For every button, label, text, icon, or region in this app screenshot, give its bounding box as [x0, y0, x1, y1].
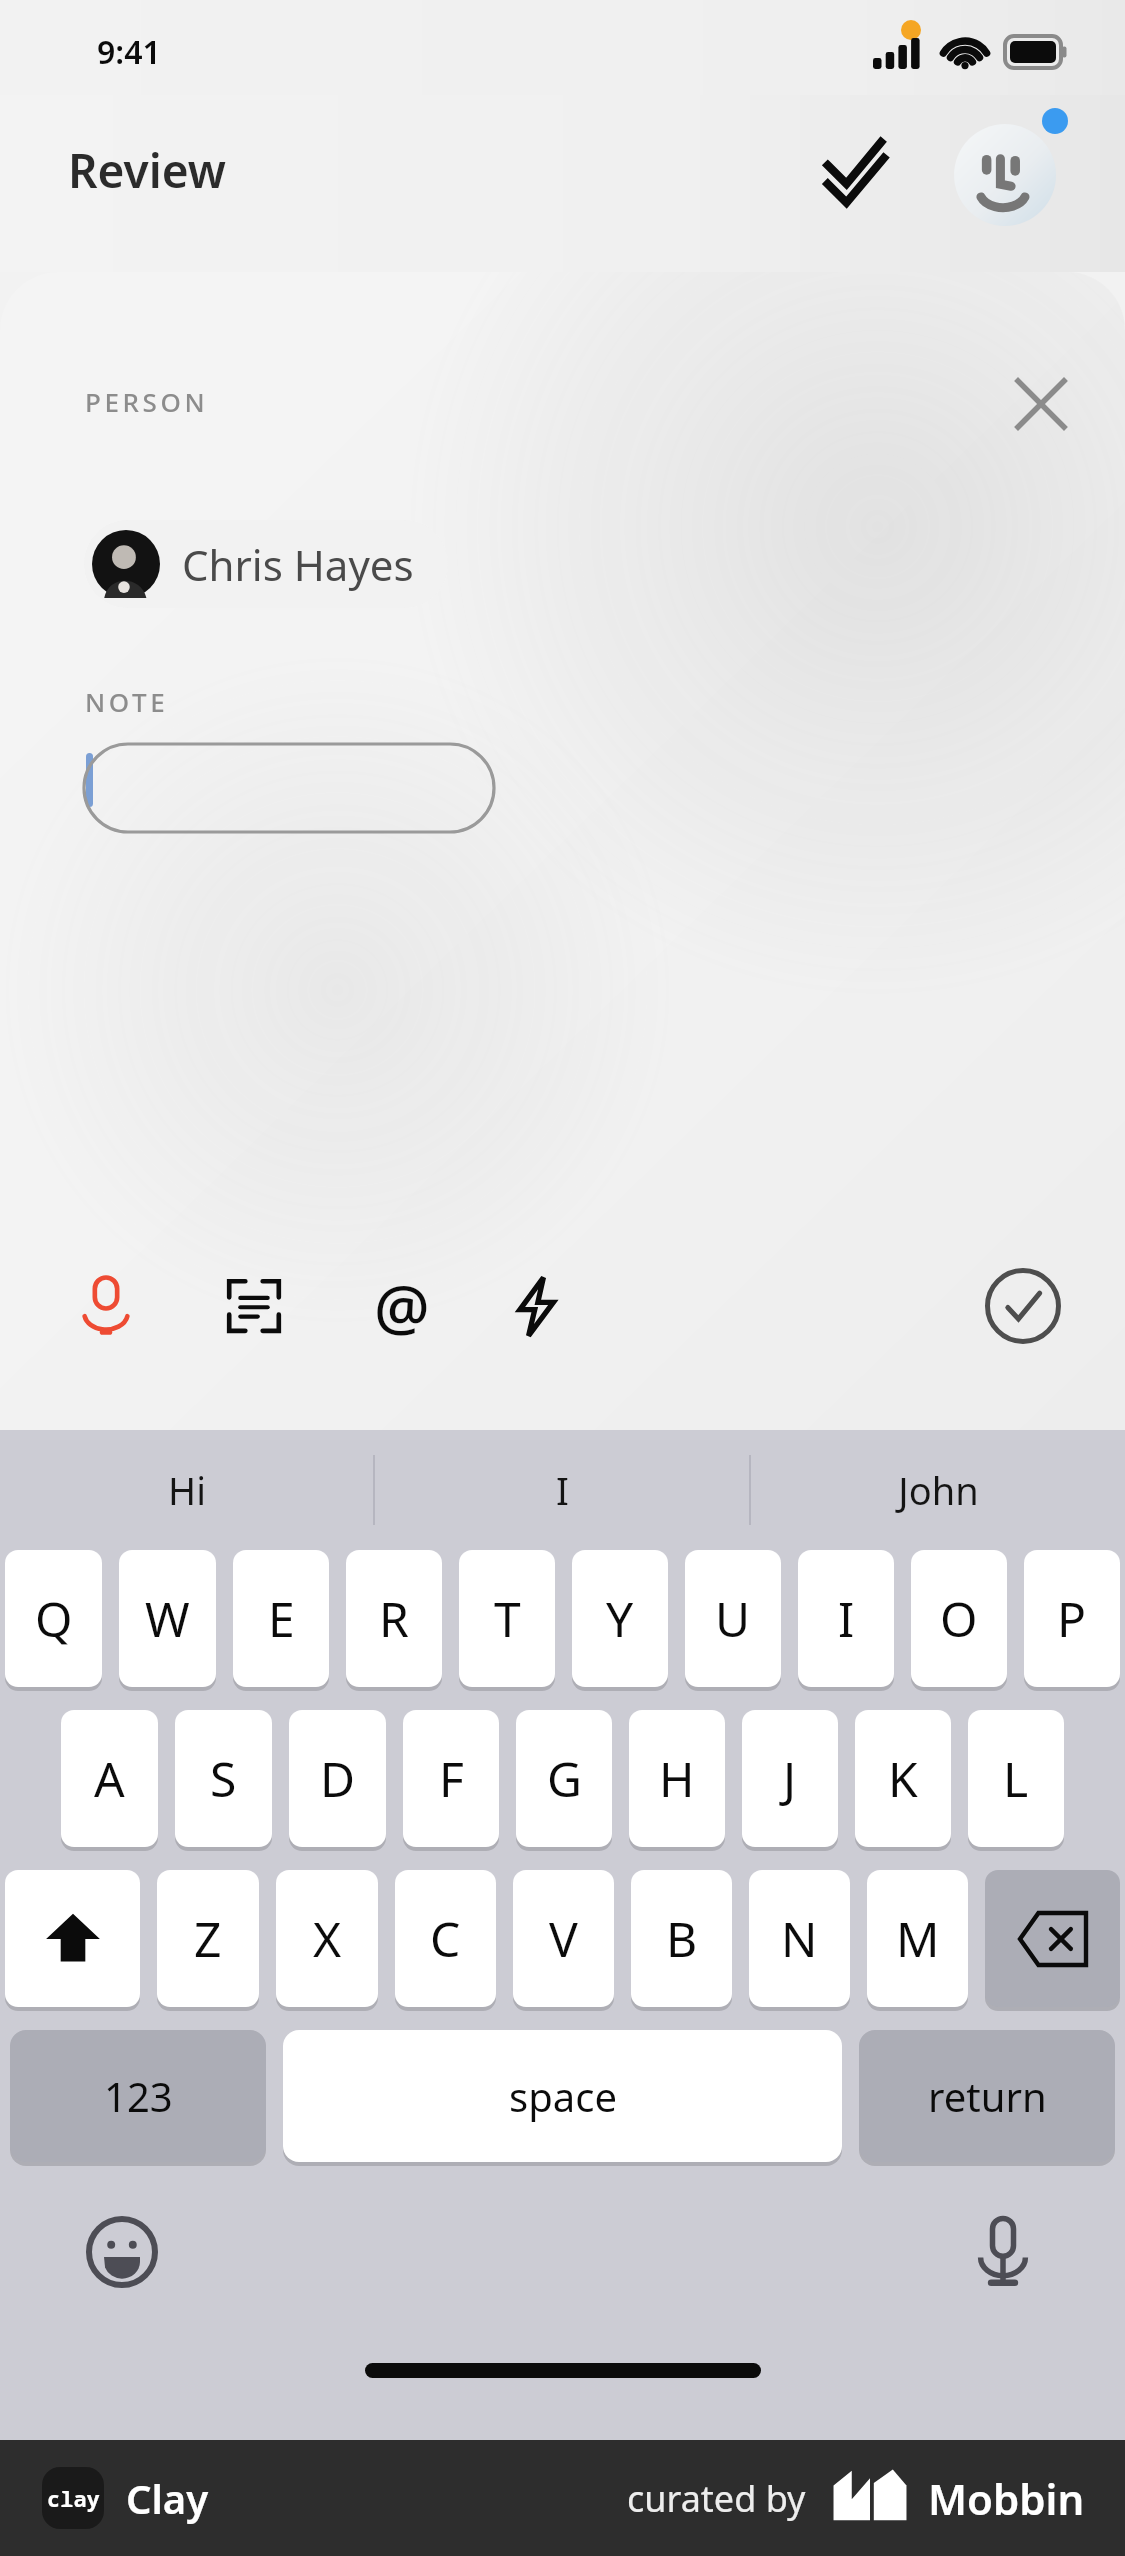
button[interactable]: Y — [572, 1550, 668, 1687]
button[interactable]: N — [749, 1870, 850, 2007]
button[interactable]: Return — [859, 2030, 1115, 2162]
staticText: J — [783, 1746, 797, 1811]
button[interactable]: Mark all reviewed — [800, 113, 916, 229]
staticText: F — [439, 1746, 464, 1811]
button[interactable]: Q — [5, 1550, 102, 1687]
button[interactable]: Numbers — [10, 2030, 266, 2162]
button[interactable]: R — [346, 1550, 442, 1687]
button[interactable]: Scan — [204, 1256, 304, 1356]
button[interactable]: Space — [283, 2030, 842, 2162]
button[interactable]: E — [233, 1550, 329, 1687]
staticText: B — [666, 1906, 698, 1971]
staticText: Hi — [168, 1464, 206, 1516]
staticText: U — [715, 1586, 751, 1651]
button[interactable]: M — [867, 1870, 968, 2007]
button[interactable]: B — [631, 1870, 732, 2007]
staticText: @ — [374, 1264, 430, 1348]
button[interactable]: U — [685, 1550, 781, 1687]
staticText: L — [1003, 1746, 1029, 1811]
button[interactable]: clay — [42, 2467, 209, 2529]
staticText: W — [145, 1586, 190, 1651]
button[interactable]: J — [742, 1710, 838, 1847]
button[interactable]: X — [276, 1870, 378, 2007]
button[interactable]: Hi — [0, 1430, 373, 1550]
button[interactable]: P — [1024, 1550, 1120, 1687]
button[interactable]: Backspace — [985, 1870, 1120, 2007]
staticText: Chris Hayes — [182, 536, 414, 593]
button[interactable]: Dictation — [957, 2206, 1049, 2298]
button[interactable]: F — [403, 1710, 499, 1847]
staticText: Y — [606, 1586, 634, 1651]
staticText: space — [509, 2069, 617, 2123]
staticText: H — [659, 1746, 695, 1811]
button[interactable]: Quick actions — [486, 1256, 586, 1356]
staticText: D — [320, 1746, 356, 1811]
staticText: Mobbin — [928, 2470, 1085, 2527]
button[interactable]: K — [855, 1710, 951, 1847]
staticText: K — [888, 1746, 918, 1811]
button[interactable]: I — [375, 1430, 749, 1550]
staticText: C — [430, 1906, 461, 1971]
staticText: return — [928, 2069, 1047, 2123]
button[interactable]: curated by — [627, 2467, 1085, 2529]
button[interactable]: I — [798, 1550, 894, 1687]
staticText: PERSON — [85, 384, 209, 419]
button[interactable]: A — [61, 1710, 158, 1847]
button[interactable]: V — [513, 1870, 614, 2007]
button[interactable]: Profile — [940, 106, 1070, 236]
staticText: A — [94, 1746, 125, 1811]
button[interactable]: G — [516, 1710, 612, 1847]
staticText: Q — [35, 1586, 73, 1651]
button[interactable]: D — [289, 1710, 386, 1847]
staticText: curated by — [627, 2474, 806, 2523]
staticText: S — [210, 1746, 237, 1811]
staticText: NOTE — [85, 684, 169, 719]
staticText: T — [494, 1586, 521, 1651]
button[interactable]: Close — [993, 356, 1089, 452]
button[interactable]: Chris Hayes — [84, 520, 448, 608]
staticText: M — [896, 1906, 940, 1971]
staticText: clay — [47, 2483, 100, 2513]
staticText: X — [313, 1906, 342, 1971]
button[interactable]: H — [629, 1710, 725, 1847]
button[interactable]: Voice — [56, 1256, 156, 1356]
staticText: P — [1057, 1586, 1087, 1651]
button[interactable]: Done — [973, 1256, 1073, 1356]
staticText: G — [547, 1746, 582, 1811]
button[interactable]: Z — [157, 1870, 259, 2007]
staticText: 9:41 — [97, 30, 161, 74]
staticText: R — [379, 1586, 409, 1651]
staticText: John — [898, 1464, 979, 1516]
button[interactable]: W — [119, 1550, 216, 1687]
button[interactable]: Emoji — [76, 2206, 168, 2298]
button[interactable]: Mention — [352, 1256, 452, 1356]
staticText: Clay — [126, 2471, 209, 2525]
button[interactable]: S — [175, 1710, 272, 1847]
staticText: V — [549, 1906, 578, 1971]
staticText: Z — [194, 1906, 222, 1971]
staticText: 123 — [104, 2069, 173, 2123]
button[interactable]: C — [395, 1870, 496, 2007]
button[interactable]: O — [911, 1550, 1007, 1687]
staticText: N — [781, 1906, 818, 1971]
staticText: I — [556, 1464, 569, 1516]
staticText: E — [268, 1586, 295, 1651]
staticText: O — [940, 1586, 978, 1651]
button[interactable]: John — [751, 1430, 1125, 1550]
button[interactable]: L — [968, 1710, 1064, 1847]
button[interactable]: T — [459, 1550, 555, 1687]
button[interactable]: Shift — [5, 1870, 140, 2007]
staticText: I — [838, 1586, 855, 1651]
staticText: Review — [68, 139, 226, 202]
